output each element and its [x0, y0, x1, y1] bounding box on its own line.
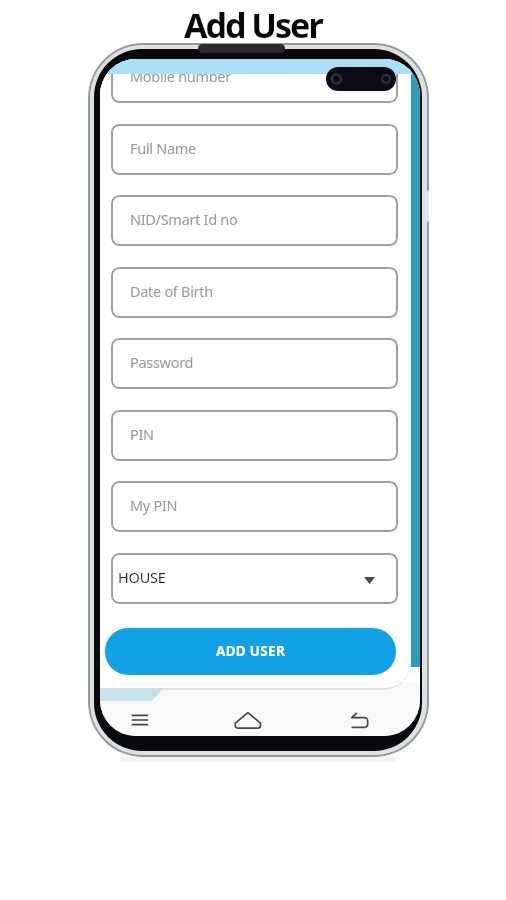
staticText: NID/Smart Id no — [130, 209, 238, 229]
button[interactable]: NID/Smart Id no — [111, 195, 398, 246]
staticText: HOUSE — [118, 567, 166, 587]
staticText: Date of Birth — [130, 281, 213, 301]
button[interactable]: Date of Birth — [111, 267, 398, 318]
staticText: ADD USER — [216, 642, 286, 660]
staticText: Add User — [184, 2, 322, 48]
button[interactable]: My PIN — [111, 481, 398, 532]
button[interactable]: Full Name — [111, 124, 398, 175]
staticText: Password — [130, 352, 194, 372]
button[interactable] — [232, 705, 264, 733]
staticText: PIN — [130, 424, 154, 444]
staticText: Full Name — [130, 138, 196, 158]
button[interactable]: ADD USER — [105, 628, 396, 675]
button[interactable]: Mobile number — [111, 59, 398, 103]
button[interactable]: HOUSE — [111, 553, 398, 604]
button[interactable]: PIN — [111, 410, 398, 461]
staticText: My PIN — [130, 495, 178, 515]
staticText: Mobile number — [130, 66, 231, 86]
button[interactable] — [344, 705, 376, 733]
button[interactable]: Password — [111, 338, 398, 389]
button[interactable] — [124, 705, 156, 733]
